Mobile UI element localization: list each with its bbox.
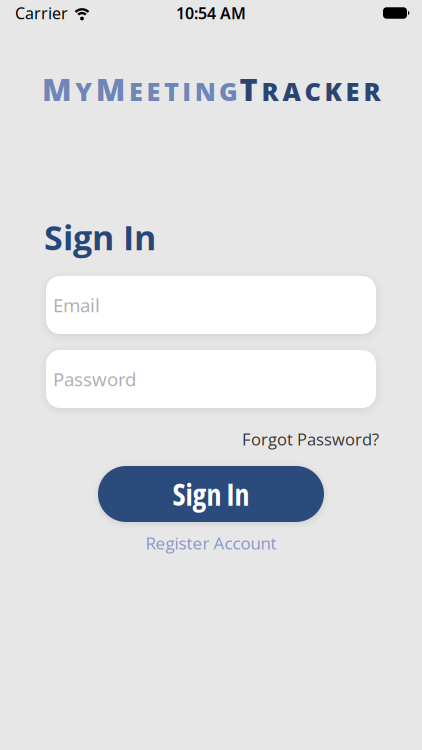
staticText: I	[182, 74, 191, 108]
staticText: Register Account	[145, 531, 276, 555]
staticText: Password	[53, 367, 136, 391]
staticText: A	[282, 74, 300, 108]
staticText: Sign In	[44, 214, 156, 260]
button[interactable]: Email	[46, 276, 376, 334]
staticText: G	[219, 74, 238, 108]
button[interactable]: Register Account	[145, 531, 276, 555]
staticText: R	[261, 74, 278, 108]
staticText: Y	[75, 74, 92, 108]
staticText: E	[129, 74, 143, 108]
button[interactable]: Sign In	[98, 466, 324, 522]
staticText: K	[324, 74, 341, 108]
staticText: T	[164, 74, 179, 108]
staticText: N	[195, 74, 216, 108]
button[interactable]: Password	[46, 350, 376, 408]
staticText: E	[345, 74, 359, 108]
button[interactable]: Forgot Password?	[242, 428, 379, 450]
staticText: E	[146, 74, 160, 108]
staticText: R	[363, 74, 380, 108]
staticText: Sign In	[172, 474, 249, 514]
staticText: 10:54 AM	[176, 2, 246, 24]
staticText: C	[304, 74, 320, 108]
staticText: M	[96, 68, 126, 110]
staticText: Carrier	[15, 2, 68, 24]
staticText: Email	[53, 293, 100, 317]
staticText: Forgot Password?	[242, 428, 379, 450]
staticText: T	[239, 68, 257, 110]
staticText: M	[42, 68, 72, 110]
